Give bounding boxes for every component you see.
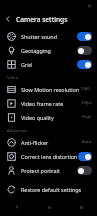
button[interactable]: Video quality (0, 110, 97, 124)
staticText: 1080p 120fps (80, 86, 92, 92)
staticText: High (82, 114, 92, 120)
staticText: Restore default settings (21, 186, 82, 193)
button[interactable]: Home (33, 198, 65, 216)
staticText: Slow Motion resolution (21, 86, 80, 93)
staticText: Geotagging (21, 47, 51, 54)
button[interactable]: Protect portrait (0, 163, 97, 177)
button[interactable]: Toggle on (78, 152, 92, 161)
button[interactable]: Geotagging (0, 43, 97, 57)
button[interactable]: Slow Motion resolution (0, 82, 97, 96)
staticText: Video frame rate (21, 100, 64, 107)
staticText: Video quality (21, 114, 54, 121)
button[interactable]: Correct lens distortion (0, 149, 97, 163)
staticText: 30fps (81, 100, 92, 106)
button[interactable]: Back (0, 11, 16, 27)
staticText: Grid (21, 61, 32, 68)
staticText: Advanced (7, 127, 27, 133)
button[interactable]: Toggle off (77, 46, 92, 55)
staticText: Correct lens distortion (21, 153, 78, 160)
staticText: Anti-flicker (21, 139, 49, 146)
staticText: Protect portrait (21, 167, 60, 174)
button[interactable]: Toggle off (77, 166, 92, 175)
button[interactable]: Shutter sound (0, 29, 97, 43)
staticText: Camera settings (16, 15, 68, 24)
staticText: Auto (82, 139, 92, 145)
button[interactable]: Toggle on (77, 32, 92, 41)
button[interactable]: Back (0, 198, 33, 216)
staticText: Shutter sound (21, 33, 58, 40)
button[interactable]: Video frame rate (0, 96, 97, 110)
button[interactable]: Toggle on (77, 60, 92, 69)
button[interactable]: Recents (65, 198, 97, 216)
button[interactable]: Anti-flicker (0, 135, 97, 149)
button[interactable]: Restore default settings (0, 182, 97, 196)
button[interactable]: Grid (0, 57, 97, 71)
staticText: Video (7, 74, 19, 80)
